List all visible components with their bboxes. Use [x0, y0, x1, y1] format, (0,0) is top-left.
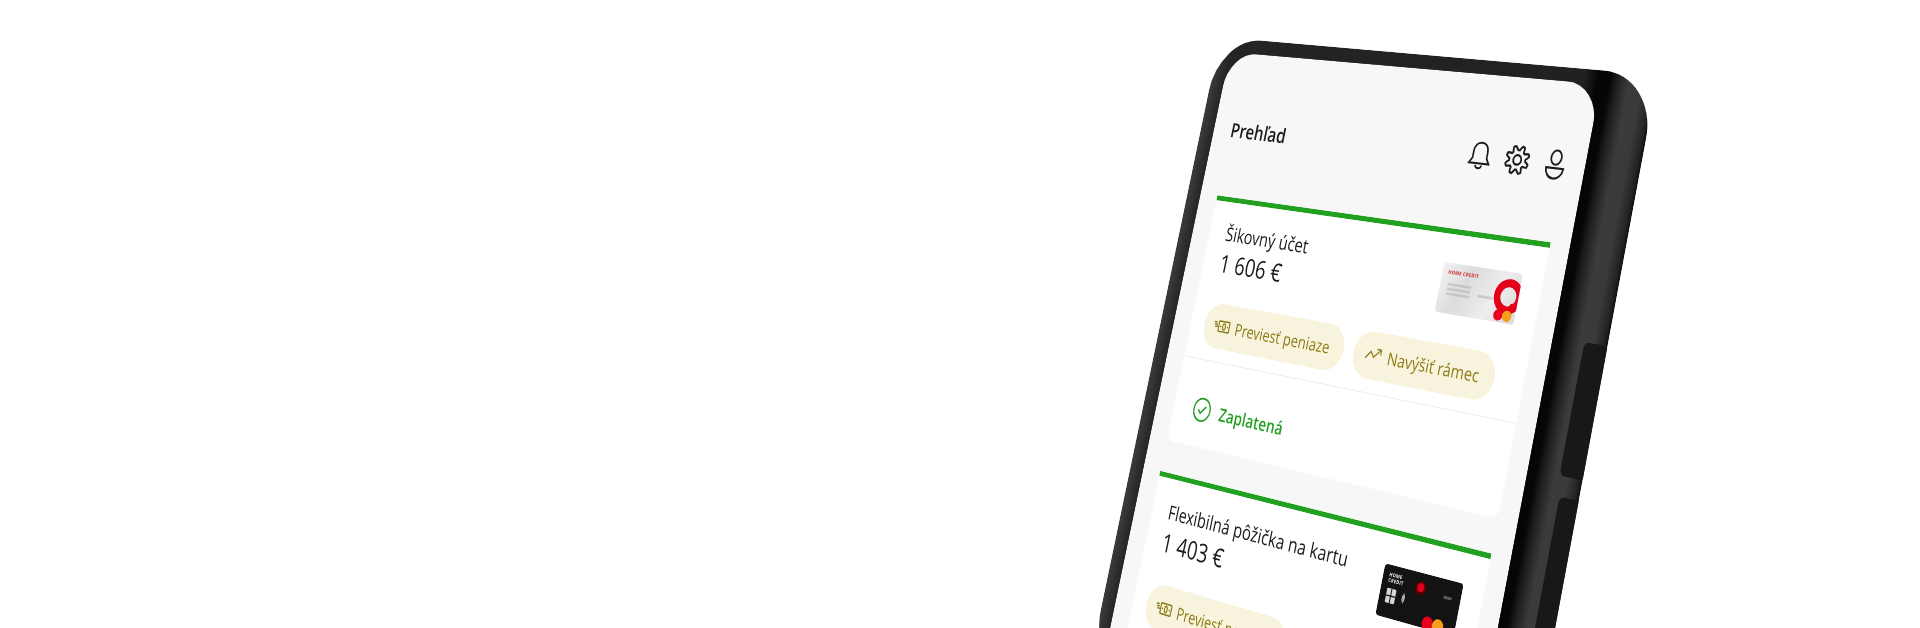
button[interactable]: Navýšiť rámec	[1349, 328, 1499, 403]
staticText: Previesť peniaze	[1233, 318, 1332, 359]
staticText: HOME CREDIT	[1388, 570, 1406, 588]
button[interactable]: Profile	[1538, 146, 1572, 183]
button[interactable]: Previesť peniaze	[1142, 581, 1289, 628]
staticText: Prehľad	[1228, 116, 1289, 149]
staticText: Šikovný účet	[1224, 220, 1311, 259]
button[interactable]: Previesť peniaze	[1200, 301, 1348, 373]
staticText: Previesť peniaze	[1174, 601, 1273, 628]
button[interactable]: Navýšiť rámec	[1289, 624, 1440, 628]
staticText: 1 403 €	[1159, 524, 1227, 575]
staticText: Navýšiť rámec	[1385, 346, 1482, 388]
staticText: HOME CREDIT	[1448, 268, 1480, 279]
staticText: Zaplatená	[1217, 402, 1285, 440]
staticText: 1 606 €	[1217, 245, 1285, 289]
button[interactable]: Zaplatená	[1166, 356, 1516, 519]
button[interactable]: Settings	[1501, 142, 1534, 178]
staticText: Flexibilná pôžička na kartu	[1166, 498, 1351, 573]
button[interactable]: Notifications	[1464, 138, 1496, 173]
